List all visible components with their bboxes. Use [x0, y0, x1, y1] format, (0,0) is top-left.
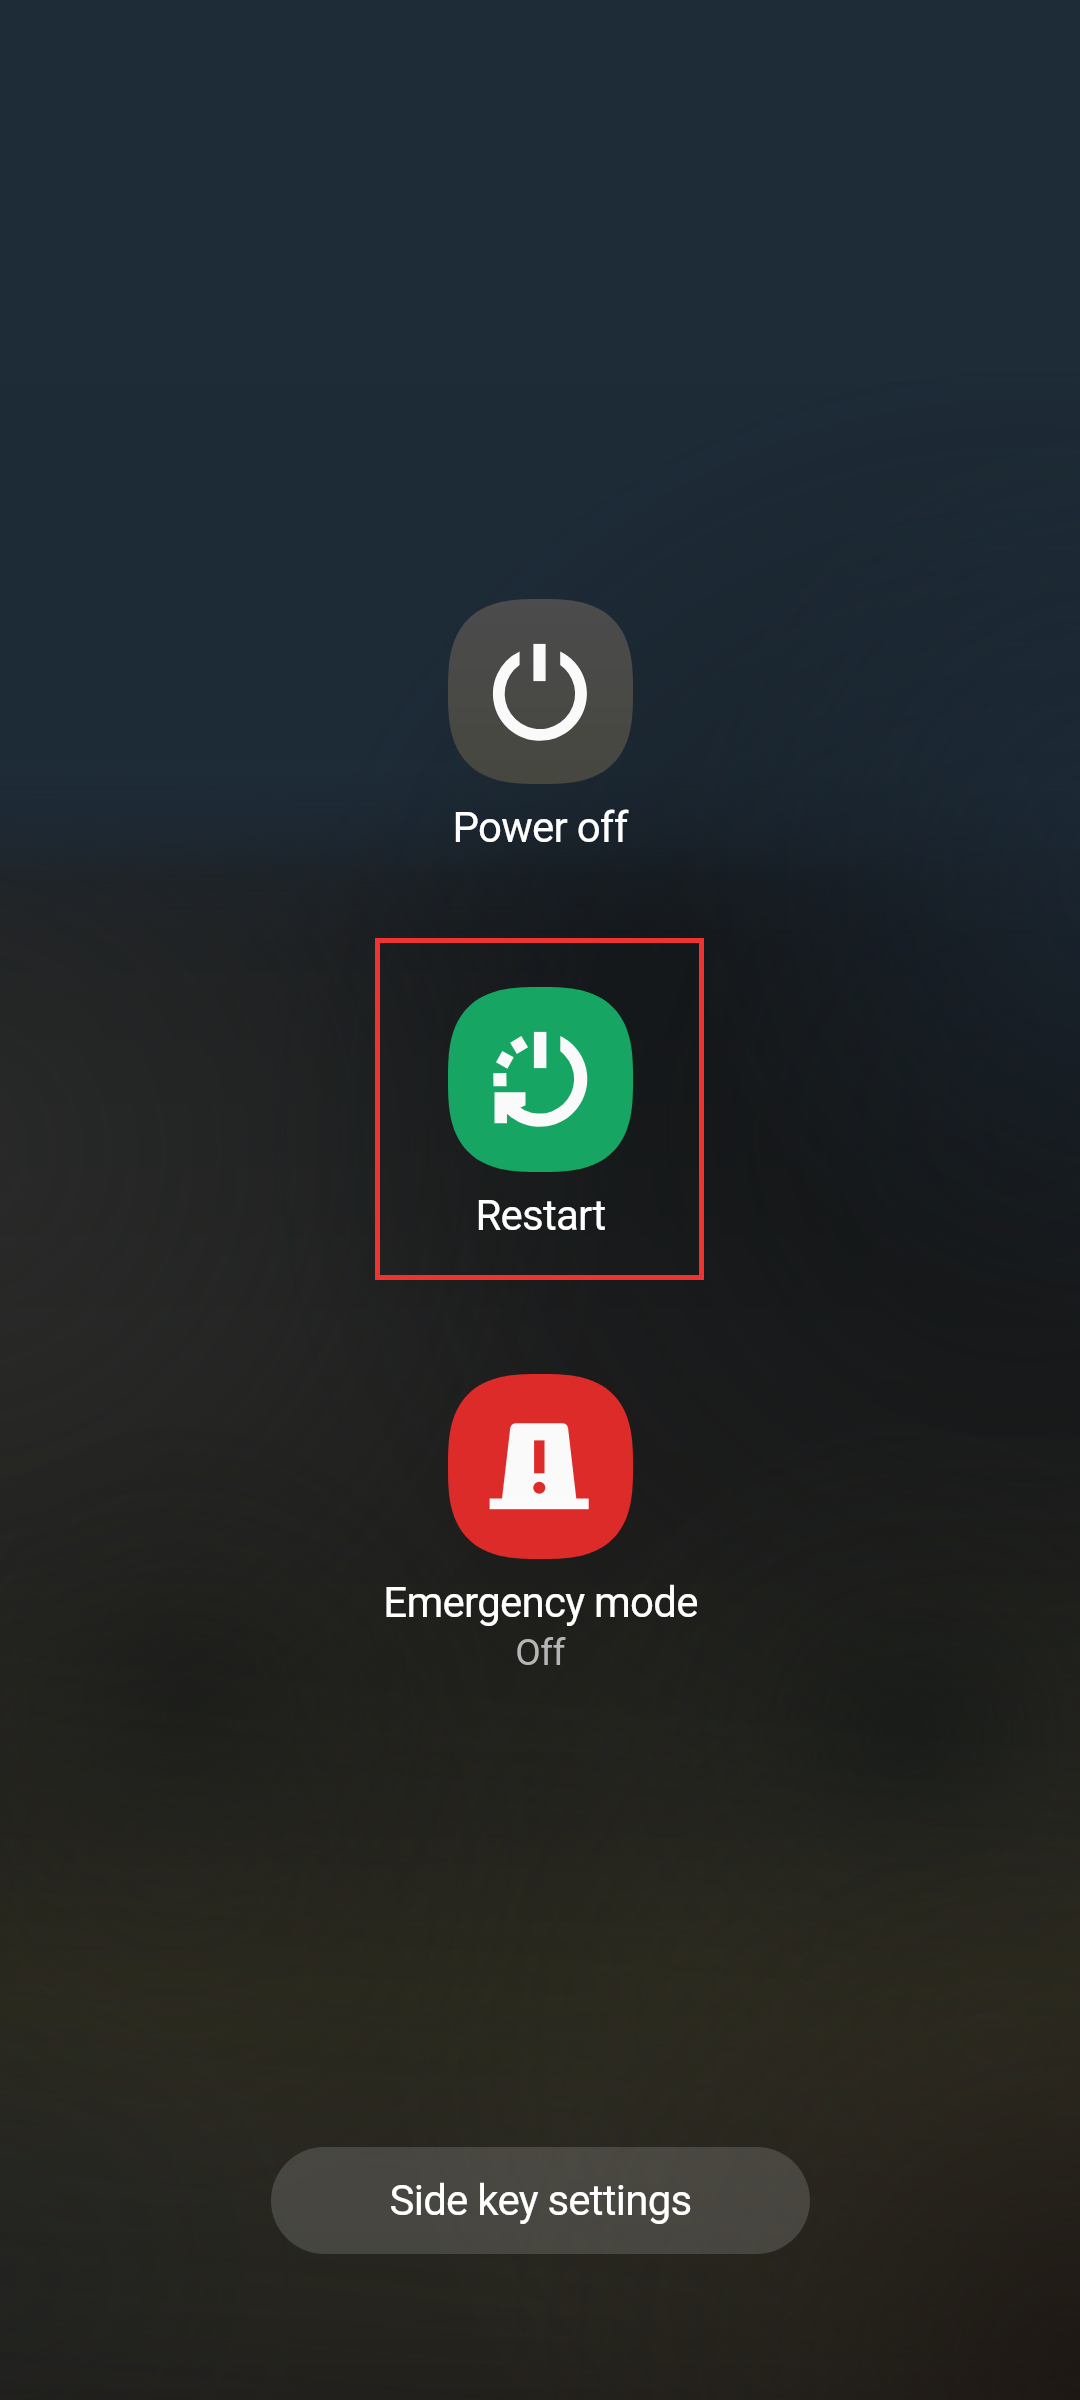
staticText: Emergency mode [383, 1578, 698, 1627]
staticText: Off [515, 1631, 565, 1674]
staticText: Restart [475, 1191, 606, 1240]
button[interactable]: Power off [375, 599, 705, 852]
button[interactable]: Side key settings [271, 2147, 810, 2254]
button[interactable]: Emergency mode [375, 1374, 705, 1674]
button[interactable]: Restart [375, 987, 705, 1240]
staticText: Side key settings [389, 2176, 692, 2225]
staticText: Power off [452, 803, 628, 852]
